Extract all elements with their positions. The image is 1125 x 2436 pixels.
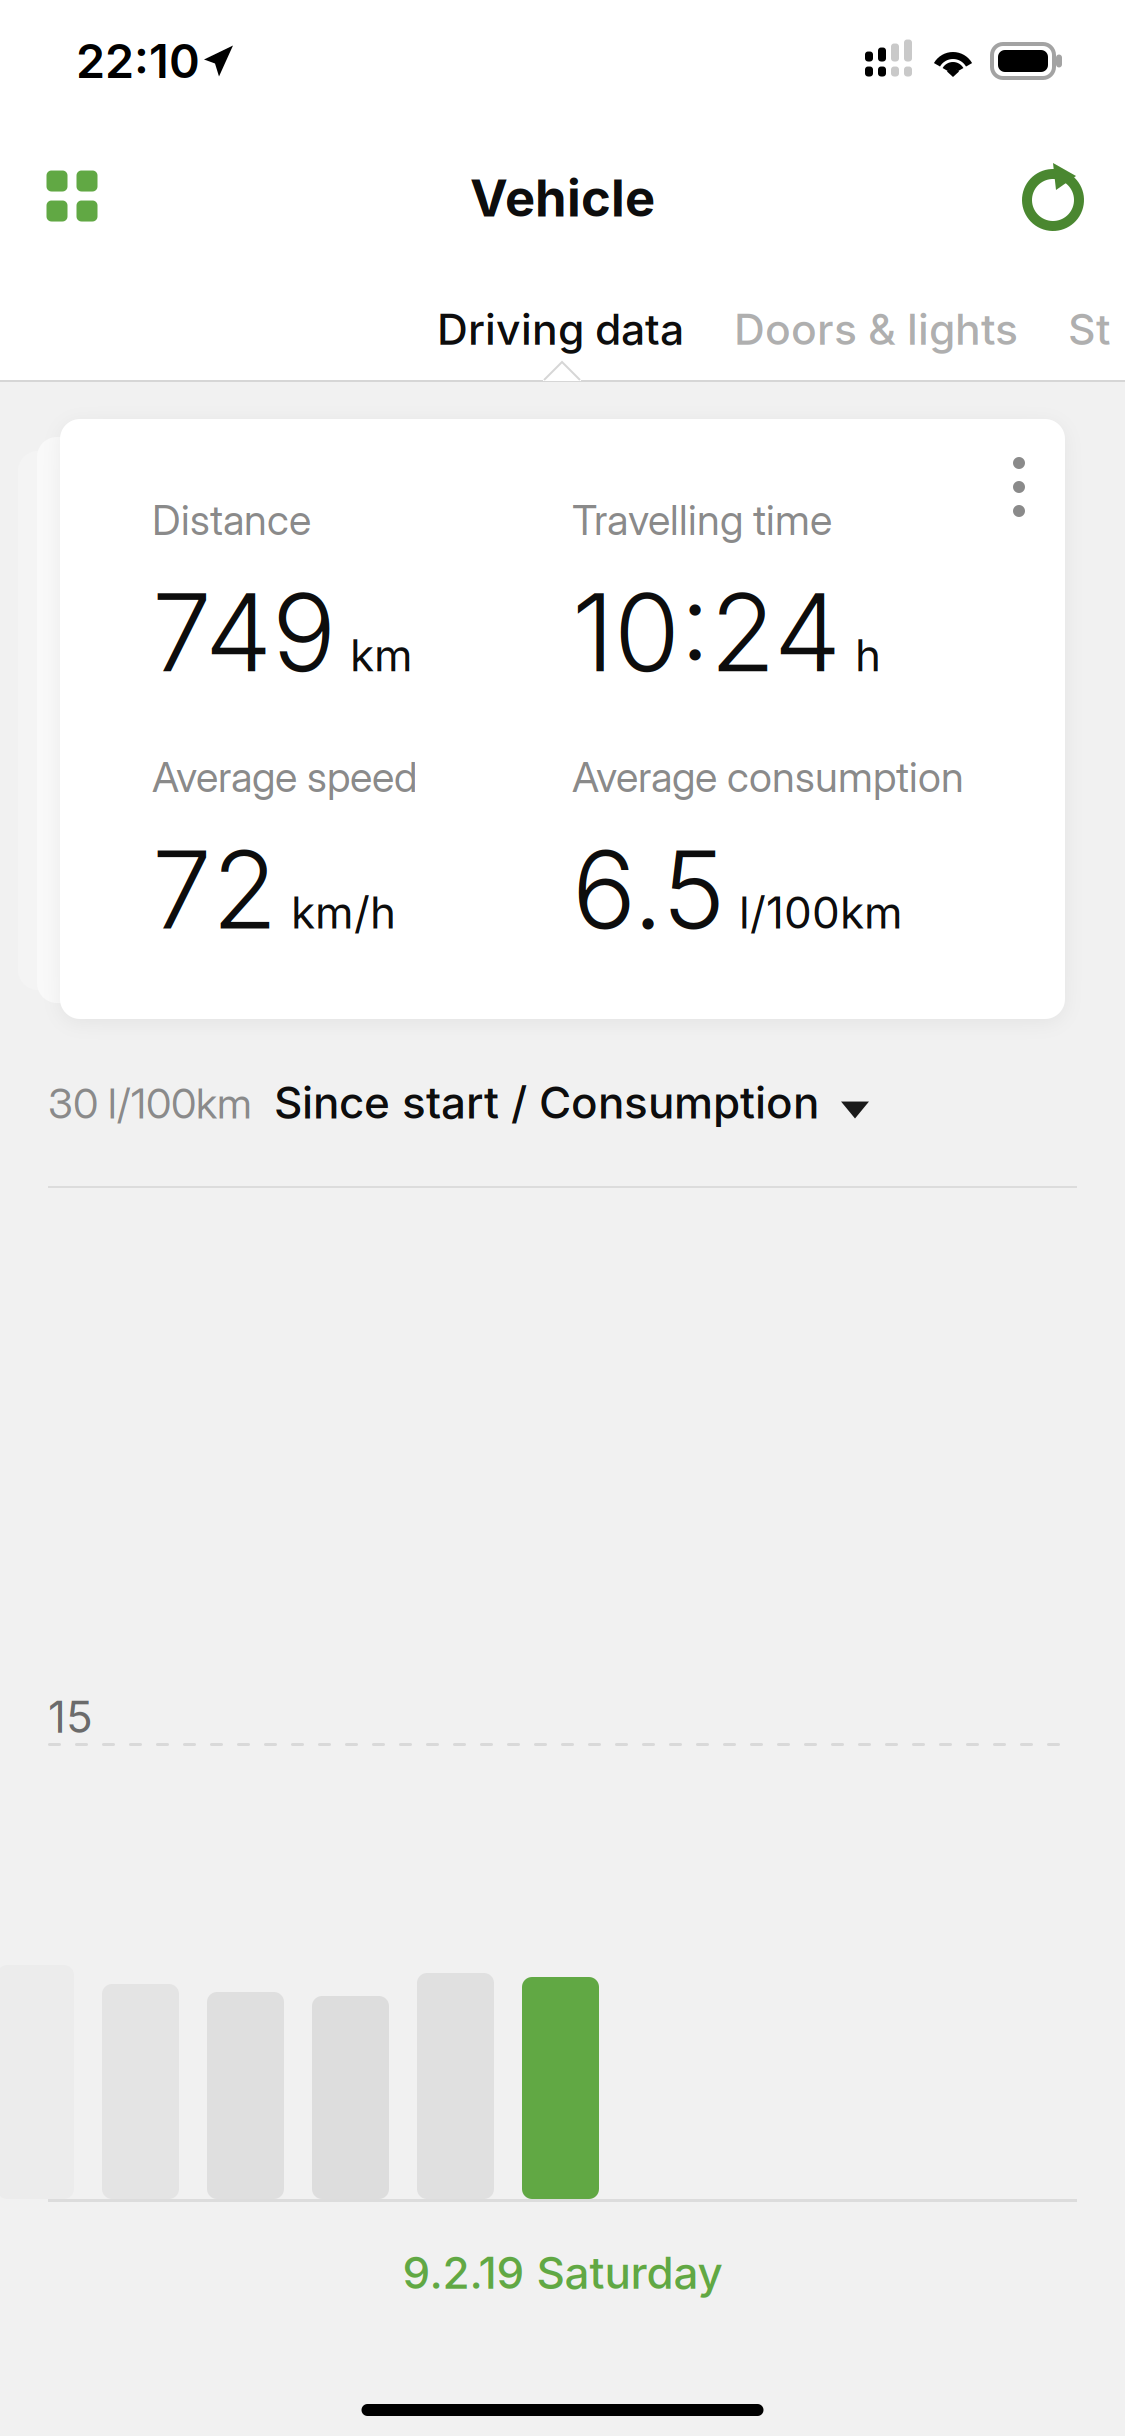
staticText: Distance [152,495,311,545]
staticText: Driving data [437,303,684,355]
staticText: l/100km [739,886,903,939]
staticText: Travelling time [572,495,832,545]
staticText: 15 [48,1690,93,1743]
staticText: km/h [291,886,396,939]
button[interactable]: St [1018,303,1111,355]
staticText: 6.5 [572,825,725,954]
button[interactable]: Doors & lights [684,303,1018,355]
button[interactable]: Refresh [1003,146,1103,246]
staticText: 10:24 [572,568,841,697]
staticText: St [1068,303,1111,355]
staticText: Average speed [152,752,417,802]
staticText: km [350,629,413,682]
staticText: 749 [152,568,336,697]
staticText: Average consumption [572,752,964,802]
staticText: 9.2.19 Saturday [402,2246,722,2299]
staticText: 22:10 [76,33,200,89]
staticText: Doors & lights [734,303,1018,355]
staticText: 72 [152,825,277,954]
button[interactable]: More options [973,419,1065,555]
staticText: h [855,629,881,682]
staticText: Since start / Consumption [274,1076,819,1129]
button[interactable]: Since start / Consumption [252,1076,869,1129]
staticText: Vehicle [470,167,655,229]
staticText: 30 l/100km [48,1078,252,1128]
button[interactable]: Dashboard [22,146,122,246]
button[interactable]: Driving data [437,303,684,355]
